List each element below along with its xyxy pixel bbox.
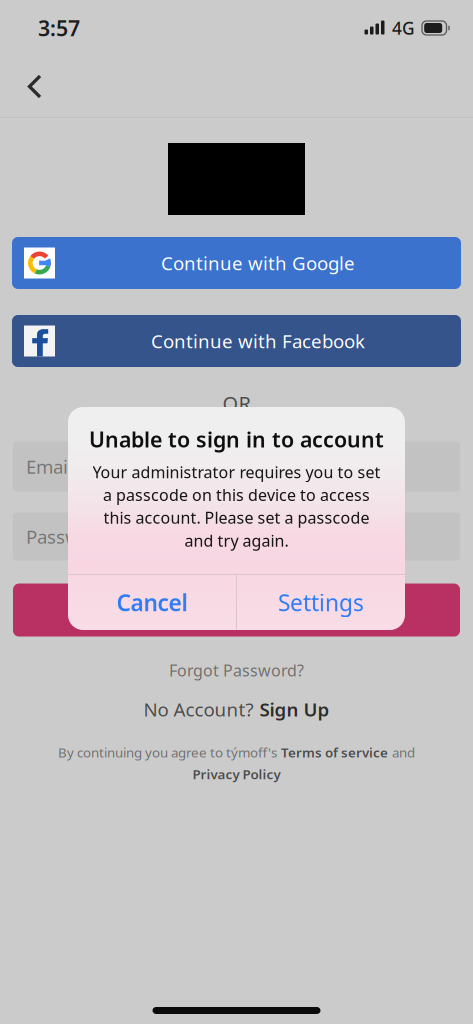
button[interactable]: Back xyxy=(16,67,58,105)
staticText: 4G xyxy=(392,16,415,39)
staticText: Your administrator requires you to set xyxy=(92,461,380,482)
staticText: Cancel xyxy=(116,587,187,617)
staticText: Forgot Password? xyxy=(169,660,304,681)
button[interactable]: Continue with Facebook xyxy=(12,315,461,367)
staticText: Continue with Facebook xyxy=(151,329,365,353)
button[interactable]: Settings xyxy=(237,575,405,630)
staticText: No Account? xyxy=(143,697,253,722)
button[interactable]: Sign In xyxy=(13,584,460,637)
staticText: Sign Up xyxy=(259,697,329,722)
staticText: Email xyxy=(26,454,73,479)
button[interactable]: Sign Up xyxy=(259,697,329,722)
staticText: and xyxy=(392,744,415,761)
staticText: a passcode on this device to access xyxy=(103,484,370,505)
staticText: Unable to sign in to account xyxy=(89,425,384,453)
staticText: Terms of service xyxy=(281,744,388,761)
staticText: Settings xyxy=(278,587,364,617)
button[interactable]: Continue with Google xyxy=(12,237,461,289)
button[interactable]: Forgot Password? xyxy=(169,660,304,681)
staticText: Continue with Google xyxy=(161,251,355,275)
button[interactable]: Privacy Policy xyxy=(192,765,280,783)
staticText: 3:57 xyxy=(38,14,80,42)
button[interactable]: Terms of service xyxy=(281,744,388,761)
staticText: and try again. xyxy=(184,530,288,551)
staticText: By continuing you agree to týmoff's xyxy=(58,744,277,761)
staticText: Password xyxy=(26,524,109,549)
staticText: Sign In xyxy=(202,597,270,623)
staticText: OR xyxy=(222,390,250,417)
staticText: Privacy Policy xyxy=(192,765,280,783)
button[interactable]: Cancel xyxy=(68,575,236,630)
staticText: this account. Please set a passcode xyxy=(103,507,369,528)
